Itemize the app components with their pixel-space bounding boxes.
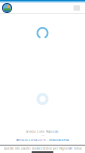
- staticText: SERVIZIO CIVILE 2016 - GRADUATORIA: [16, 138, 69, 142]
- button[interactable]: Menu: [73, 5, 85, 11]
- button[interactable]: Servizio Civile home: [0, 3, 12, 13]
- staticText: Questo sito usa dei cookies tecnici per …: [4, 147, 81, 150]
- staticText: Roma: [40, 134, 44, 136]
- staticText: Servizio Civile Nazionale: [26, 130, 59, 133]
- button[interactable]: SERVIZIO CIVILE 2016 - GRADUATORIA: [16, 138, 69, 142]
